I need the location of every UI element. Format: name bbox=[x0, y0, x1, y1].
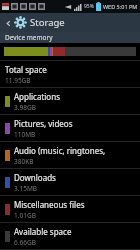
button[interactable]: Device memory bbox=[0, 32, 140, 43]
button[interactable]: Pictures, videos bbox=[0, 115, 140, 141]
staticText: 3.98GB bbox=[14, 103, 36, 112]
staticText: Pictures, videos bbox=[14, 118, 73, 129]
staticText: WED 5:01 PM bbox=[103, 3, 138, 10]
button[interactable]: Back bbox=[0, 13, 140, 32]
staticText: Device memory bbox=[5, 33, 53, 42]
staticText: Available space bbox=[14, 226, 72, 237]
button[interactable]: Total space bbox=[0, 61, 140, 87]
button[interactable]: Applications bbox=[0, 88, 140, 114]
staticText: 95% bbox=[84, 3, 94, 10]
staticText: Storage bbox=[30, 16, 65, 29]
staticText: 3.15MB bbox=[14, 184, 38, 193]
staticText: 1.01GB bbox=[14, 211, 36, 220]
staticText: 11.95GB bbox=[5, 76, 31, 85]
staticText: 380KB bbox=[14, 157, 34, 166]
staticText: Audio (music, ringtones, podcas.. bbox=[14, 145, 136, 156]
button[interactable]: Back bbox=[3, 18, 13, 28]
staticText: Downloads bbox=[14, 172, 56, 183]
button[interactable]: Downloads bbox=[0, 169, 140, 195]
staticText: 6.66GB bbox=[14, 238, 36, 247]
staticText: Total space bbox=[5, 64, 47, 75]
staticText: Miscellaneous files bbox=[14, 199, 85, 210]
button[interactable]: Audio (music, ringtones, podcas.. bbox=[0, 142, 140, 168]
staticText: Applications bbox=[14, 91, 60, 102]
button[interactable]: Available space bbox=[0, 223, 140, 249]
staticText: 110MB bbox=[14, 130, 36, 139]
button[interactable]: Miscellaneous files bbox=[0, 196, 140, 222]
